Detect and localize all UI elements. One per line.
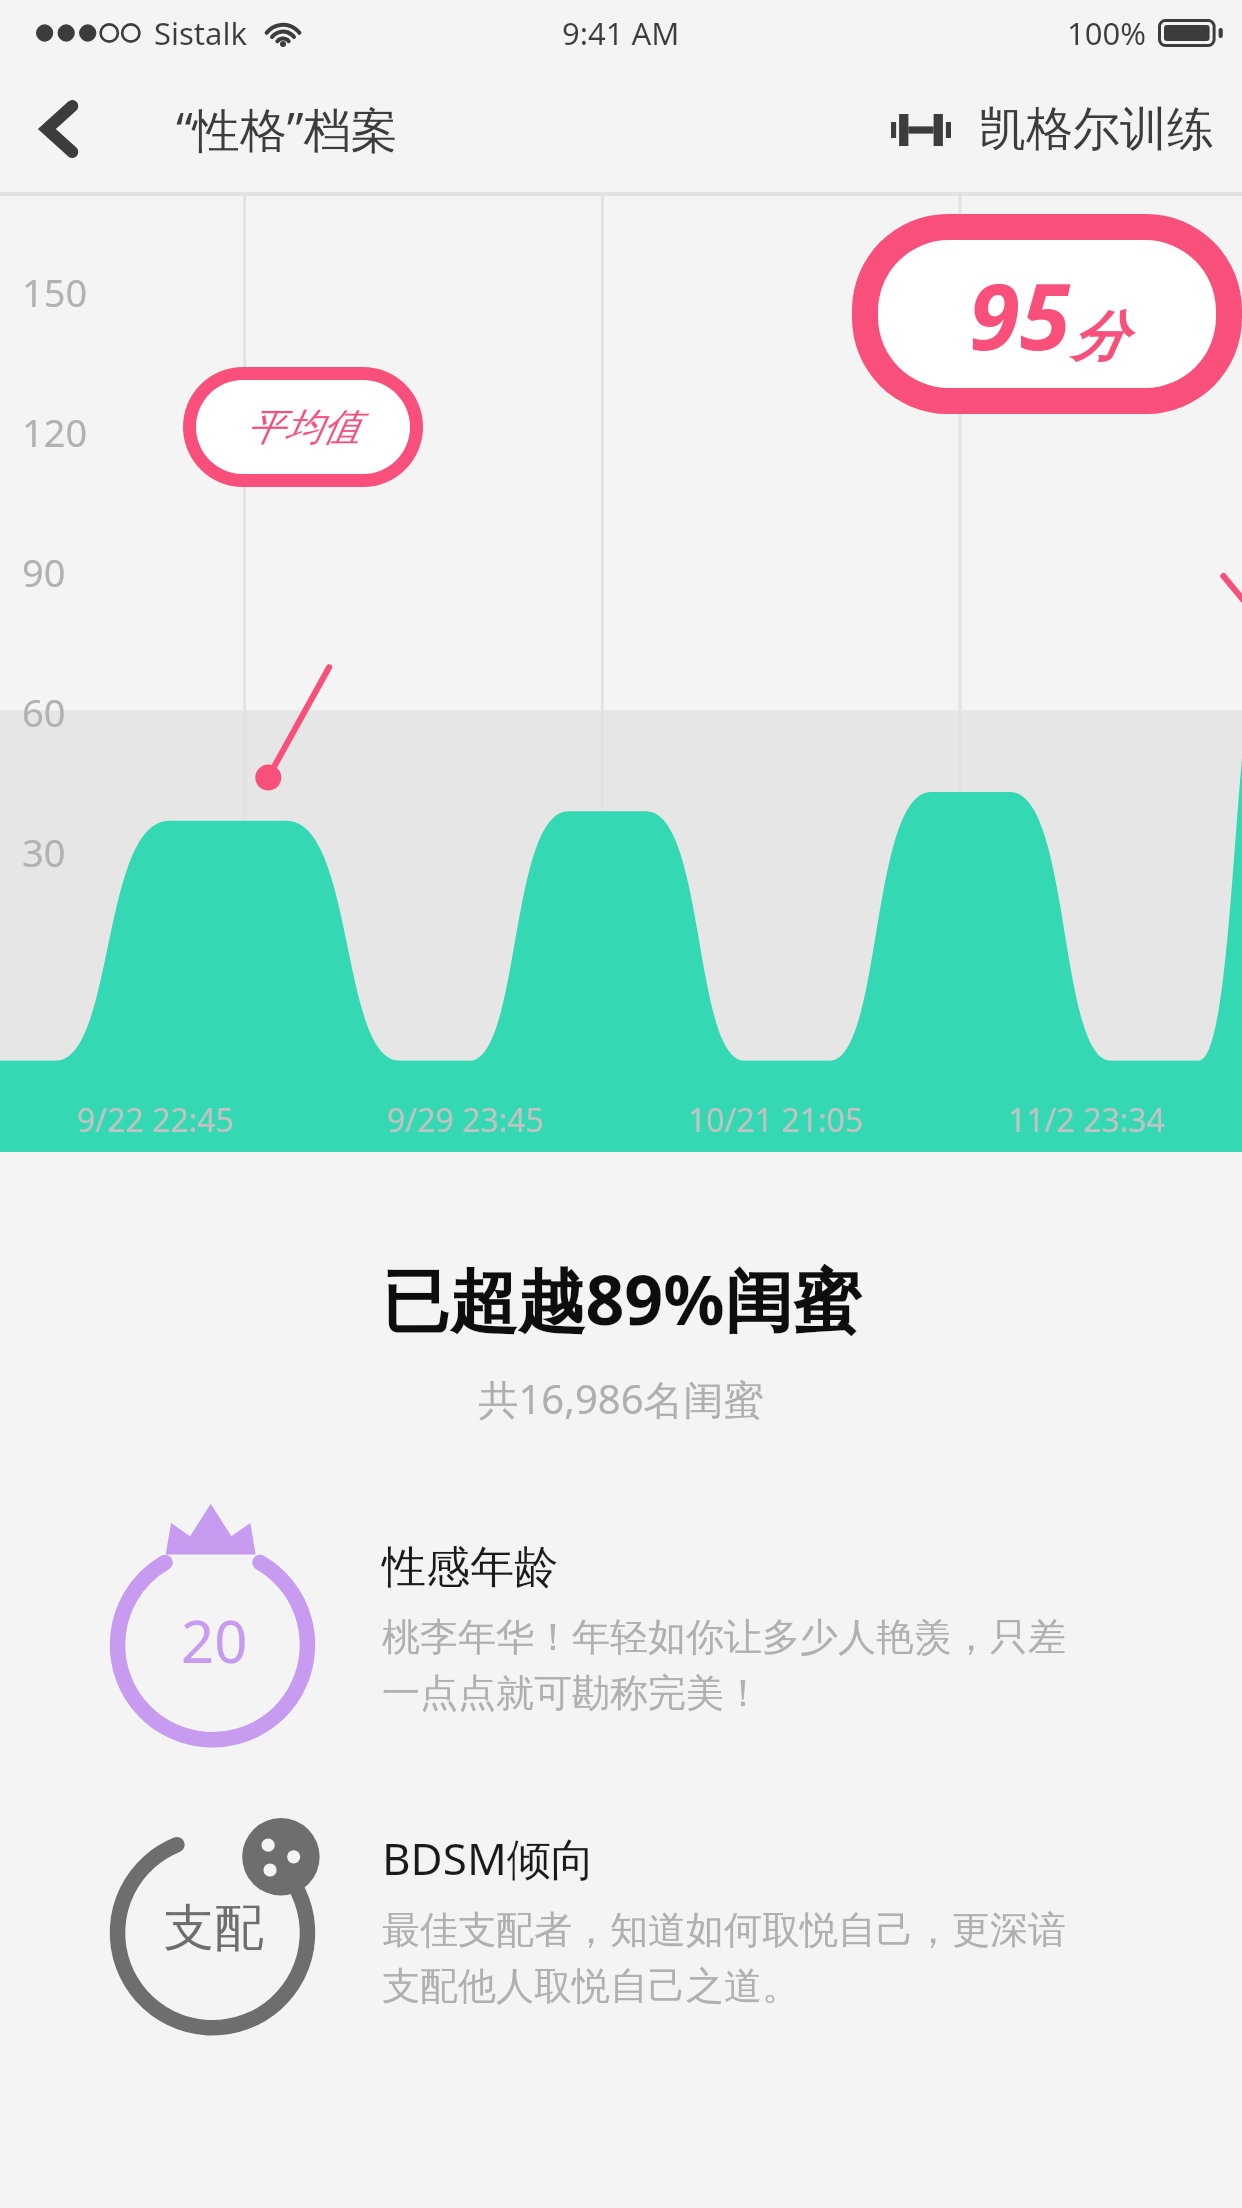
staticText: Sistalk xyxy=(154,12,247,54)
button[interactable]: 20 xyxy=(0,1506,1242,1756)
staticText: 一点点就可勘称完美！ xyxy=(382,1669,762,1717)
staticText: 30 xyxy=(22,826,66,878)
button[interactable]: Back xyxy=(0,81,98,177)
staticText: 150 xyxy=(22,266,88,318)
staticText: 凯格尔训练 xyxy=(979,100,1214,159)
button[interactable]: 支配 xyxy=(0,1794,1242,2044)
staticText: 性感年龄 xyxy=(382,1540,558,1595)
staticText: “性格”档案 xyxy=(176,97,398,161)
staticText: 60 xyxy=(22,686,66,738)
staticText: 已超越89%闺蜜 xyxy=(381,1252,861,1345)
staticText: 10/21 21:05 xyxy=(688,1098,864,1142)
staticText: 共16,986名闺蜜 xyxy=(478,1371,764,1426)
staticText: 95 xyxy=(969,252,1071,377)
staticText: 9/29 23:45 xyxy=(387,1098,544,1142)
staticText: 90 xyxy=(22,546,66,598)
staticText: 11/2 23:34 xyxy=(1008,1098,1165,1142)
staticText: 120 xyxy=(22,406,88,458)
staticText: 支配 xyxy=(164,1897,264,1960)
staticText: 桃李年华！年轻如你让多少人艳羡，只差 xyxy=(382,1613,1066,1661)
staticText: 分 xyxy=(1071,303,1125,371)
staticText: 20 xyxy=(181,1601,248,1680)
staticText: 支配他人取悦自己之道。 xyxy=(382,1962,800,2010)
staticText: BDSM倾向 xyxy=(382,1828,595,1888)
staticText: 9/22 22:45 xyxy=(77,1098,234,1142)
staticText: 100% xyxy=(1067,12,1146,54)
staticText: 最佳支配者，知道如何取悦自己，更深谙 xyxy=(382,1906,1066,1954)
staticText: 平均值 xyxy=(246,403,360,451)
button[interactable]: 凯格尔训练 xyxy=(871,82,1242,177)
staticText: 9:41 AM xyxy=(562,12,680,54)
